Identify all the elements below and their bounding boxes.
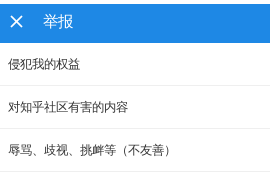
staticText: 辱骂、歧视、挑衅等（不友善）	[8, 142, 176, 158]
button[interactable]: 辱骂、歧视、挑衅等（不友善）	[0, 129, 270, 172]
staticText: 举报	[43, 12, 73, 31]
staticText: 侵犯我的权益	[8, 56, 80, 72]
button[interactable]: 关闭	[0, 4, 43, 43]
button[interactable]: 对知乎社区有害的内容	[0, 86, 270, 129]
staticText: 对知乎社区有害的内容	[8, 99, 128, 115]
button[interactable]: 侵犯我的权益	[0, 43, 270, 86]
